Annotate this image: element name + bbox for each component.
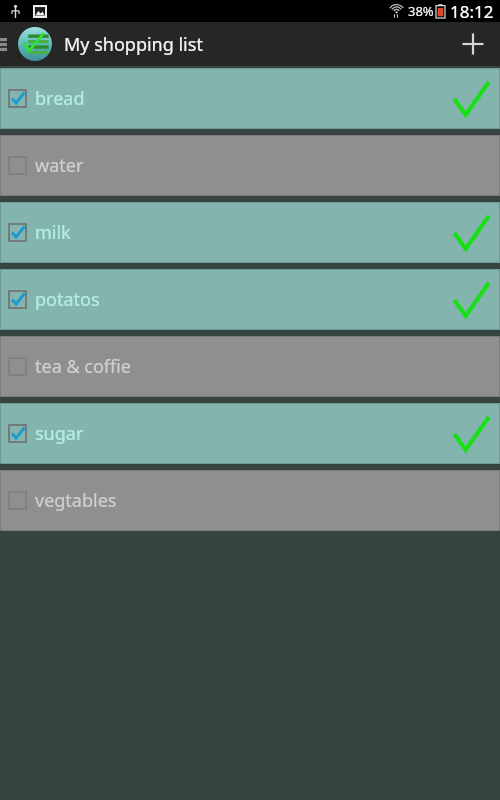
button[interactable]: bread bbox=[0, 68, 500, 129]
staticText: potatos bbox=[35, 287, 442, 312]
button[interactable]: sugar bbox=[0, 403, 500, 464]
staticText: 38% bbox=[408, 2, 434, 20]
button[interactable]: tea & coffie bbox=[0, 336, 500, 397]
staticText: tea & coffie bbox=[35, 354, 442, 379]
staticText: sugar bbox=[35, 421, 442, 446]
button[interactable]: Open navigation menu bbox=[0, 22, 14, 66]
staticText: bread bbox=[35, 86, 442, 111]
staticText: vegtables bbox=[35, 488, 442, 513]
button[interactable]: vegtables bbox=[0, 470, 500, 531]
button[interactable]: potatos bbox=[0, 269, 500, 330]
button[interactable]: Add item bbox=[446, 22, 500, 66]
staticText: milk bbox=[35, 220, 442, 245]
staticText: water bbox=[35, 153, 442, 178]
button[interactable]: water bbox=[0, 135, 500, 196]
staticText: 18:12 bbox=[450, 0, 494, 22]
staticText: My shopping list bbox=[64, 32, 203, 57]
button[interactable]: milk bbox=[0, 202, 500, 263]
